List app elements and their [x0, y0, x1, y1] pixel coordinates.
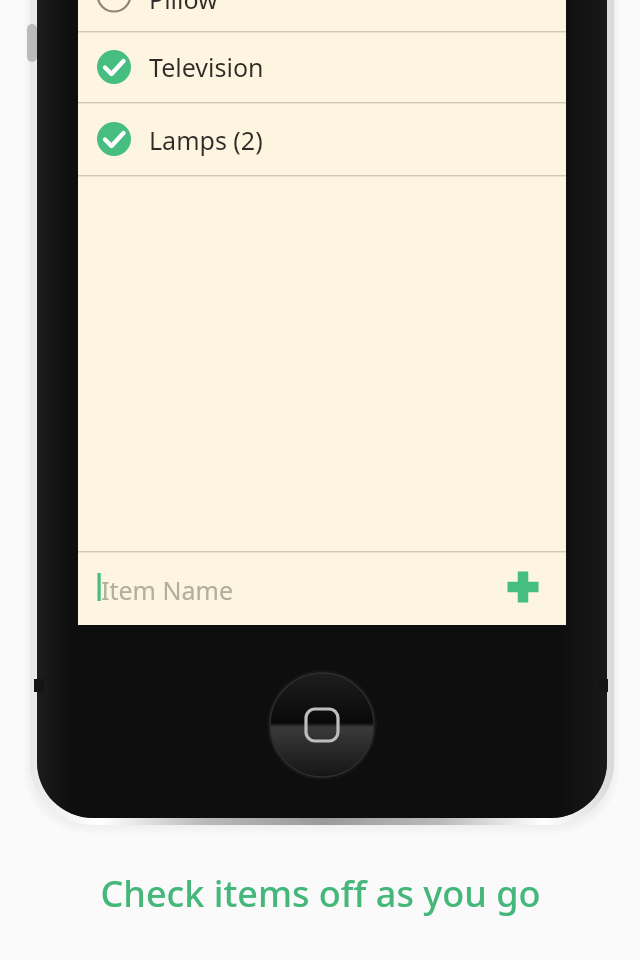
button[interactable]: Lamps (2) — [78, 104, 566, 175]
button[interactable]: Home — [270, 673, 374, 777]
staticText: Item Name — [101, 573, 233, 607]
staticText: Lamps (2) — [149, 123, 263, 157]
staticText: Check items off as you go — [100, 869, 541, 918]
staticText: Television — [149, 50, 264, 84]
staticText: Pillow — [149, 0, 218, 16]
button[interactable]: Add item — [493, 557, 553, 617]
button[interactable]: Item Name — [78, 553, 566, 625]
button[interactable]: Pillow — [78, 0, 566, 31]
button[interactable]: Television — [78, 32, 566, 102]
